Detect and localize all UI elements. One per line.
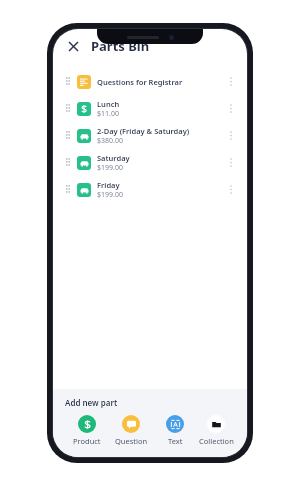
staticText: Add new part — [65, 397, 118, 408]
button[interactable]: Product — [65, 415, 109, 446]
staticText: Product — [73, 436, 101, 446]
staticText: Collection — [199, 436, 234, 446]
button[interactable]: Reorder — [53, 176, 247, 203]
staticText: Saturday — [97, 153, 130, 163]
staticText: Text — [168, 436, 183, 446]
button[interactable]: Reorder — [53, 122, 247, 149]
button[interactable]: More options — [224, 68, 238, 95]
button[interactable]: Reorder — [62, 122, 74, 149]
staticText: Lunch — [97, 99, 120, 109]
button[interactable]: Reorder — [53, 149, 247, 176]
button[interactable]: Text — [153, 415, 197, 446]
button[interactable]: More options — [224, 176, 238, 203]
button[interactable]: Reorder — [62, 149, 74, 176]
button[interactable]: Collection — [197, 415, 235, 446]
staticText: $199.00 — [97, 190, 123, 200]
staticText: Question — [115, 436, 148, 446]
button[interactable]: More options — [224, 122, 238, 149]
button[interactable]: More options — [224, 149, 238, 176]
staticText: Questions for Registrar — [97, 77, 183, 87]
button[interactable]: Reorder — [62, 176, 74, 203]
staticText: Friday — [97, 180, 120, 190]
button[interactable]: Close — [63, 36, 83, 56]
staticText: $199.00 — [97, 163, 123, 173]
staticText: $11.00 — [97, 109, 119, 119]
staticText: $380.00 — [97, 136, 123, 146]
button[interactable]: Question — [109, 415, 153, 446]
staticText: Parts Bin — [91, 37, 150, 55]
button[interactable]: Reorder — [62, 95, 74, 122]
staticText: 2-Day (Friday & Saturday) — [97, 126, 190, 136]
button[interactable]: Reorder — [53, 68, 247, 95]
button[interactable]: Reorder — [62, 68, 74, 95]
button[interactable]: Reorder — [53, 95, 247, 122]
button[interactable]: More options — [224, 95, 238, 122]
